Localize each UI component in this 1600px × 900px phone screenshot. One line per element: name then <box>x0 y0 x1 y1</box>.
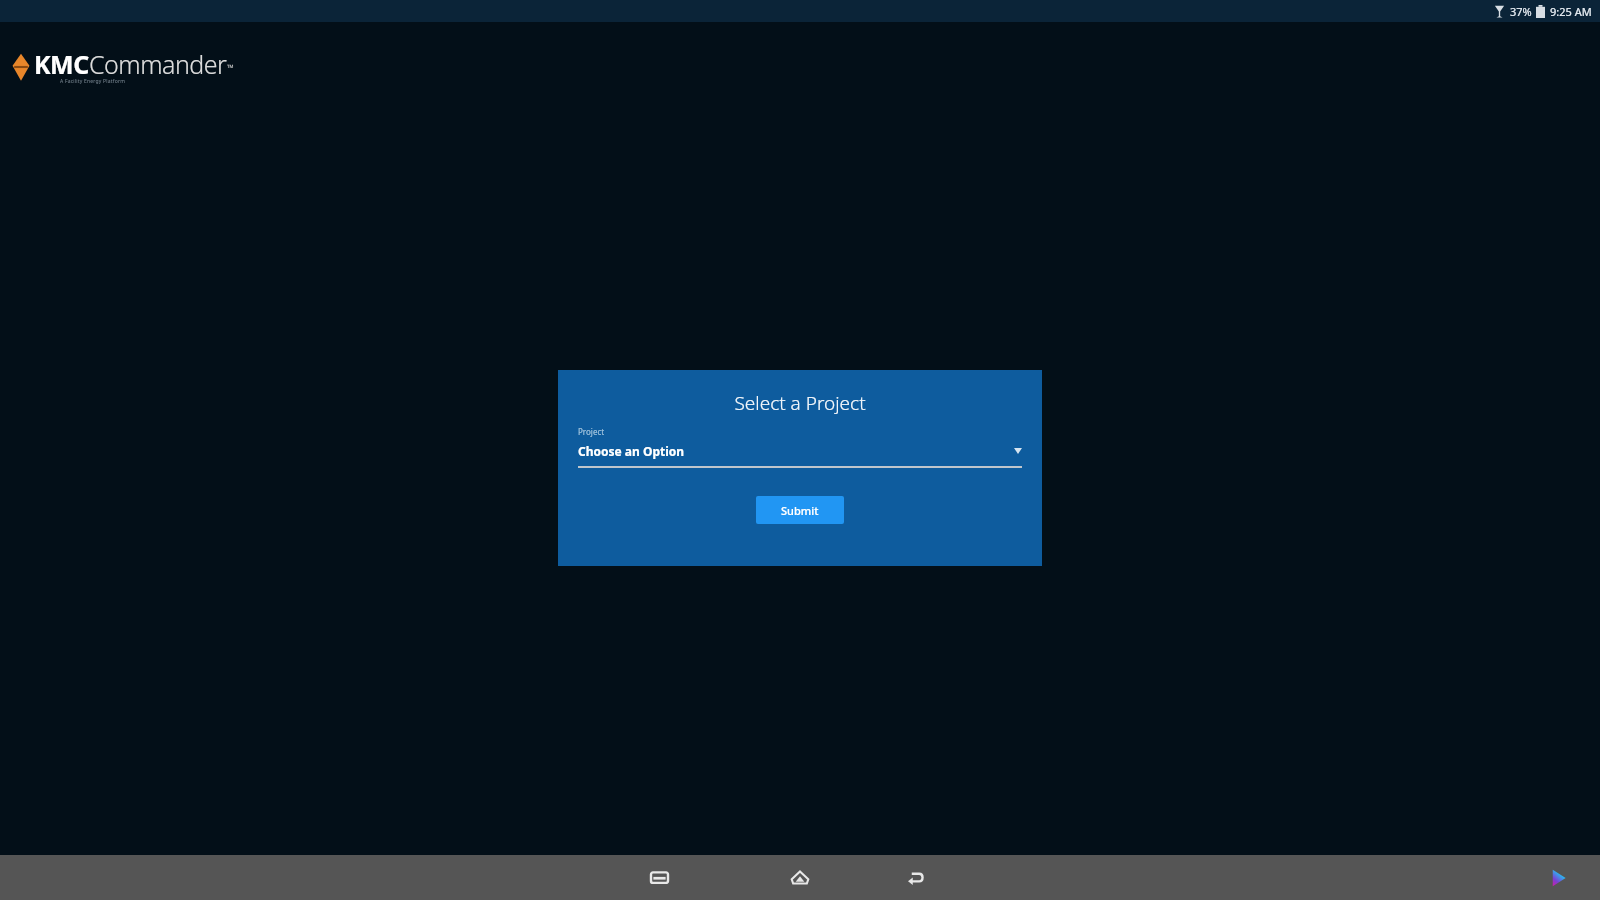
staticText: Commander <box>89 47 227 81</box>
button[interactable]: Project <box>578 426 1022 468</box>
staticText: KMC <box>34 47 89 81</box>
staticText: 9:25 AM <box>1550 4 1592 19</box>
staticText: Submit <box>781 503 819 518</box>
staticText: Project <box>578 426 605 437</box>
button[interactable]: Home <box>777 855 823 900</box>
button[interactable]: Recents <box>636 855 682 900</box>
button[interactable]: Back <box>892 855 938 900</box>
button[interactable]: Play Store <box>1538 858 1578 898</box>
staticText: A Facility Energy Platform <box>60 78 126 85</box>
staticText: ™ <box>227 61 234 73</box>
staticText: 37% <box>1510 4 1532 19</box>
staticText: Choose an Option <box>578 443 685 459</box>
staticText: Select a Project <box>578 390 1022 416</box>
button[interactable]: Submit <box>756 496 844 524</box>
